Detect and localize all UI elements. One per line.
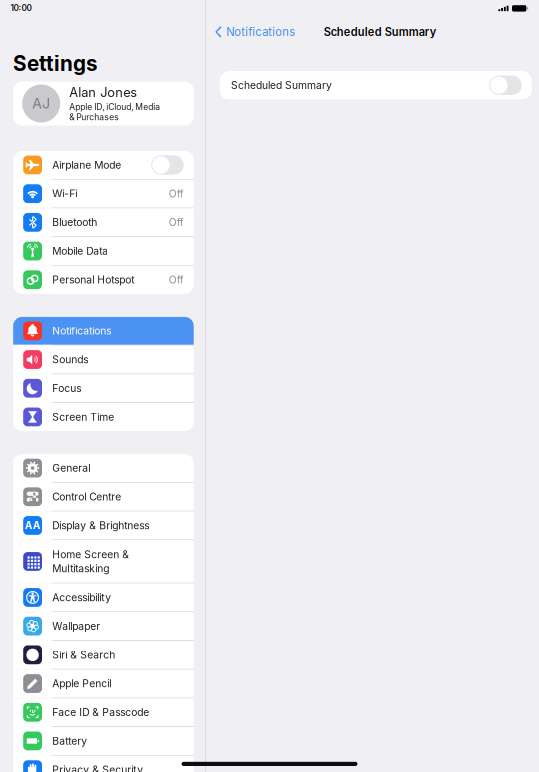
button[interactable]: General — [13, 454, 194, 482]
button[interactable]: Control Centre — [13, 483, 194, 511]
staticText: Face ID & Passcode — [52, 706, 149, 718]
staticText: Wi-Fi — [52, 187, 77, 200]
button[interactable]: AJ — [13, 81, 194, 125]
button[interactable]: Wallpaper — [13, 612, 194, 640]
button[interactable]: Wi-Fi — [13, 180, 194, 208]
staticText: Accessibility — [52, 591, 111, 604]
staticText: Alan Jones — [69, 85, 137, 100]
staticText: Apple Pencil — [52, 677, 111, 690]
staticText: Screen Time — [52, 411, 114, 423]
staticText: Wallpaper — [52, 620, 100, 632]
button[interactable]: Focus — [13, 374, 194, 402]
button[interactable]: Sounds — [13, 346, 194, 373]
button[interactable]: Accessibility — [13, 583, 194, 611]
staticText: 10:00 — [10, 3, 31, 13]
button[interactable]: Privacy & Security — [13, 756, 194, 772]
button[interactable]: Scheduled Summary — [220, 71, 532, 99]
button[interactable]: Face ID & Passcode — [13, 698, 194, 726]
button[interactable]: Notifications — [206, 20, 301, 44]
button[interactable]: Screen Time — [13, 403, 194, 431]
staticText: Bluetooth — [52, 216, 97, 228]
staticText: Off — [169, 216, 184, 228]
staticText: AJ — [32, 95, 50, 112]
staticText: Control Centre — [52, 490, 121, 503]
button[interactable]: Home Screen & — [13, 540, 194, 583]
staticText: Scheduled Summary — [324, 25, 437, 39]
staticText: Battery — [52, 735, 87, 747]
button[interactable]: Airplane Mode — [13, 151, 194, 179]
button[interactable]: Mobile Data — [13, 237, 194, 265]
staticText: Sounds — [52, 353, 88, 366]
button[interactable]: AA — [13, 511, 194, 539]
button[interactable]: Siri & Search — [13, 641, 194, 669]
staticText: Notifications — [226, 25, 295, 39]
staticText: General — [52, 462, 90, 474]
staticText: Display & Brightness — [52, 519, 149, 532]
staticText: & Purchases — [69, 112, 119, 122]
staticText: Settings — [13, 51, 98, 76]
staticText: Focus — [52, 382, 81, 394]
staticText: Airplane Mode — [52, 159, 121, 171]
staticText: Siri & Search — [52, 649, 115, 661]
staticText: Scheduled Summary — [231, 79, 332, 91]
staticText: AA — [25, 519, 40, 531]
staticText: Home Screen & — [52, 548, 129, 561]
staticText: Privacy & Security — [52, 763, 143, 772]
button[interactable]: Bluetooth — [13, 208, 194, 236]
button[interactable]: Notifications — [13, 317, 194, 345]
staticText: Apple ID, iCloud, Media — [69, 102, 160, 112]
button[interactable]: Personal Hotspot — [13, 266, 194, 294]
staticText: Off — [169, 187, 184, 200]
staticText: Mobile Data — [52, 245, 108, 257]
staticText: Multitasking — [52, 562, 109, 575]
button[interactable]: Battery — [13, 727, 194, 755]
staticText: Notifications — [52, 325, 111, 337]
button[interactable]: Apple Pencil — [13, 670, 194, 697]
staticText: Personal Hotspot — [52, 273, 134, 286]
staticText: Off — [169, 273, 184, 286]
